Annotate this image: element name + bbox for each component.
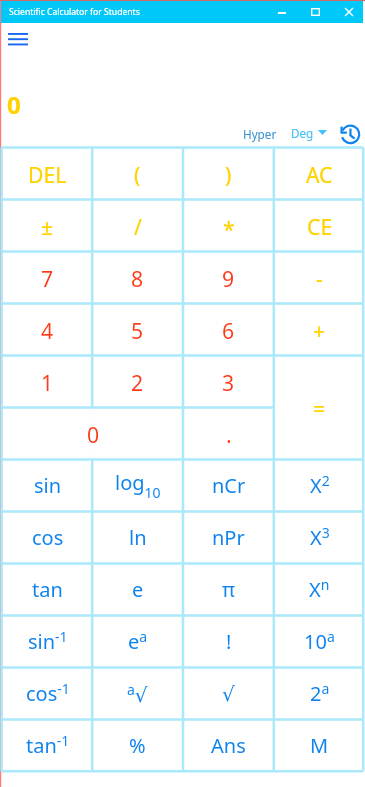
button[interactable]: √ [183,667,274,719]
staticText: 1 [41,368,54,397]
button[interactable]: Xn [274,563,365,615]
button[interactable]: X2 [274,459,365,511]
button[interactable]: . [183,408,274,460]
staticText: 4 [41,316,54,345]
staticText: Deg [291,125,314,141]
button[interactable]: 6 [183,304,274,356]
staticText: * [223,214,235,243]
button[interactable]: Ans [183,719,274,771]
staticText: ( [134,160,141,189]
staticText: ln [129,524,147,551]
button[interactable]: CE [274,200,365,252]
button[interactable]: Menu [0,26,36,53]
staticText: π [222,576,236,603]
button[interactable]: Deg [287,122,331,144]
button[interactable]: ± [2,200,93,252]
staticText: ! [226,628,232,655]
staticText: sin-1 [28,627,68,655]
staticText: - [316,264,323,293]
button[interactable]: ! [183,615,274,667]
button[interactable]: cos [2,511,93,563]
staticText: sin [34,472,62,499]
button[interactable]: + [274,304,365,356]
staticText: cos [32,524,64,551]
button[interactable]: 4 [2,304,93,356]
staticText: AC [306,160,333,189]
staticText: tan-1 [26,731,70,759]
button[interactable]: 10a [274,615,365,667]
staticText: 10a [304,627,335,655]
staticText: cos-1 [26,679,70,707]
button[interactable]: tan [2,563,93,615]
button[interactable]: a√ [92,667,183,719]
button[interactable]: * [183,200,274,252]
button[interactable]: / [92,200,183,252]
button[interactable]: 7 [2,252,93,304]
staticText: 3 [222,368,235,397]
staticText: e [132,576,144,603]
button[interactable]: nCr [183,459,274,511]
staticText: % [129,732,146,759]
button[interactable]: 2 [92,356,183,408]
staticText: Scientific Calculator for Students [9,6,140,18]
staticText: 8 [131,264,144,293]
staticText: / [134,212,142,241]
button[interactable]: cos-1 [2,667,93,719]
button[interactable]: 3 [183,356,274,408]
button[interactable]: = [274,356,365,460]
button[interactable]: DEL [2,148,93,200]
staticText: 0 [87,420,100,449]
button[interactable]: 2a [274,667,365,719]
button[interactable]: ) [183,148,274,200]
button[interactable]: Minimize [264,1,300,23]
button[interactable]: ( [92,148,183,200]
button[interactable]: Hyper [238,123,282,144]
button[interactable]: AC [274,148,365,200]
staticText: 6 [222,316,235,345]
staticText: M [310,732,329,759]
staticText: ea [128,627,148,655]
staticText: Xn [309,575,330,603]
button[interactable]: 9 [183,252,274,304]
button[interactable]: ln [92,511,183,563]
staticText: 9 [222,264,235,293]
staticText: ) [225,160,232,189]
staticText: √ [222,682,235,705]
button[interactable]: sin-1 [2,615,93,667]
button[interactable]: - [274,252,365,304]
button[interactable]: 8 [92,252,183,304]
staticText: Hyper [243,126,277,142]
staticText: DEL [28,160,67,189]
staticText: ± [41,212,54,241]
staticText: 2a [310,679,330,707]
staticText: + [313,316,326,345]
staticText: CE [307,212,333,241]
staticText: X2 [310,471,330,499]
button[interactable]: 5 [92,304,183,356]
button[interactable]: π [183,563,274,615]
staticText: . [226,420,232,449]
button[interactable]: Close [331,1,364,23]
button[interactable]: nPr [183,511,274,563]
button[interactable]: History [337,121,363,147]
button[interactable]: 0 [2,408,184,460]
button[interactable]: sin [2,459,93,511]
button[interactable]: ea [92,615,183,667]
button[interactable]: X3 [274,511,365,563]
button[interactable]: % [92,719,183,771]
button[interactable]: M [274,719,365,771]
button[interactable]: log10 [92,459,183,511]
staticText: = [313,394,326,423]
staticText: 2 [131,368,144,397]
staticText: Ans [211,732,246,759]
button[interactable]: e [92,563,183,615]
staticText: 7 [41,264,54,293]
button[interactable]: Maximize [297,1,333,23]
staticText: nPr [212,524,245,551]
button[interactable]: 1 [2,356,93,408]
button[interactable]: tan-1 [2,719,93,771]
staticText: tan [32,576,63,603]
staticText: 5 [131,316,144,345]
staticText: 0 [7,88,21,119]
staticText: log10 [115,469,161,502]
